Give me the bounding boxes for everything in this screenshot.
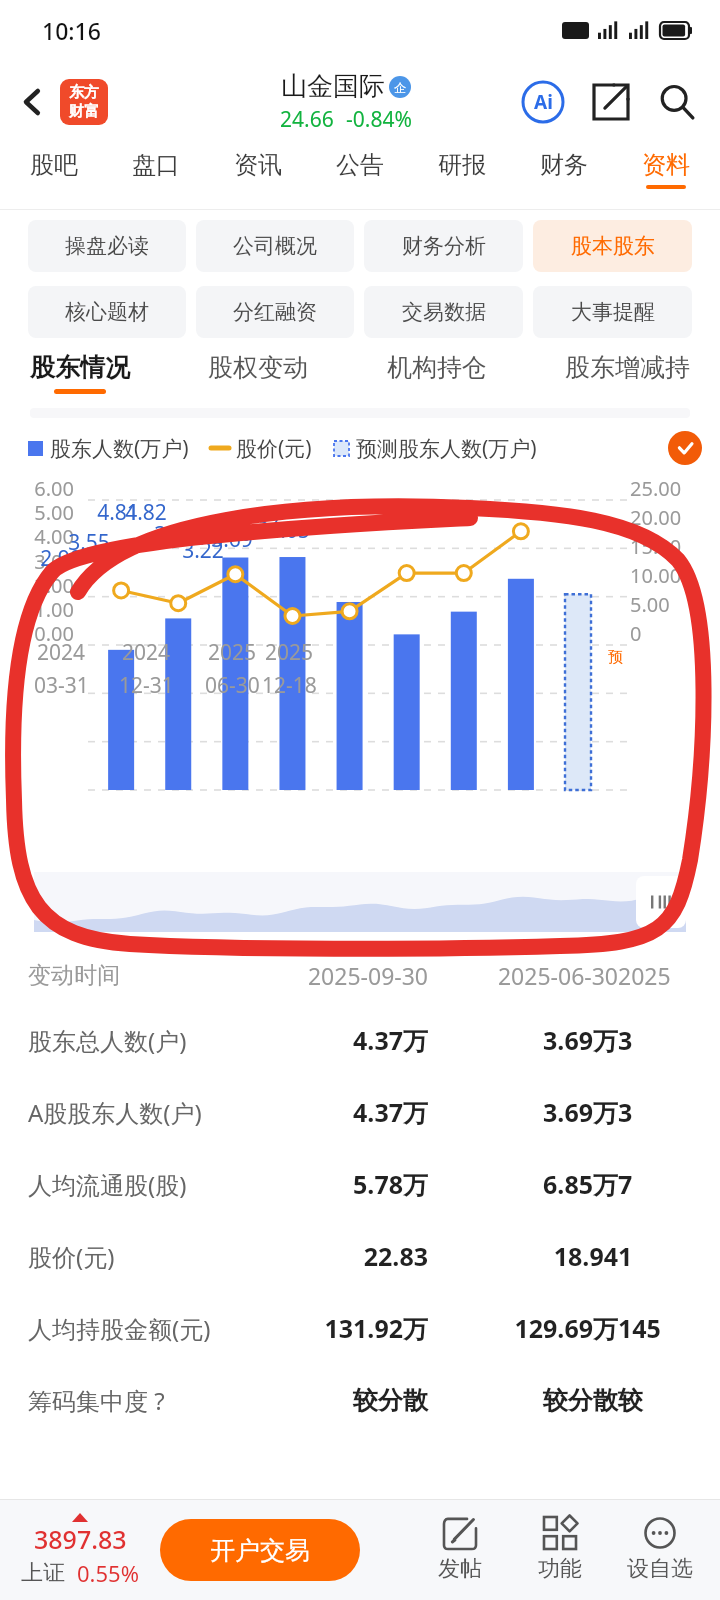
staticText: 股东人数(万户) [50,434,189,463]
staticText: 山金国际 [281,70,385,103]
staticText: 3.55 [63,528,115,557]
staticText: 筹码集中度 ? [28,1384,238,1417]
staticText: 10:16 [42,15,101,46]
staticText: A股股东人数(户) [28,1096,238,1129]
staticText: 4.05 [263,516,315,545]
button[interactable]: Search [650,75,704,129]
button[interactable]: AI [516,75,570,129]
staticText: 3 [618,1095,633,1129]
button[interactable]: 股东总人数(户) [28,1004,720,1076]
staticText: 145 [618,1311,661,1345]
staticText: 6.00 [14,475,74,502]
staticText: 4.82 [120,498,172,527]
button[interactable]: 3897.83 [0,1513,160,1588]
staticText: 财务分析 [402,233,486,259]
staticText: 分红融资 [233,299,317,325]
staticText: 股本股东 [571,233,655,259]
staticText: 交易数据 [402,299,486,325]
button[interactable]: 核心题材 [28,286,186,338]
staticText: 2025 [618,960,671,991]
button[interactable]: 公司概况 [196,220,354,272]
button[interactable]: 股价(元) [28,1220,720,1292]
staticText: 研报 [438,150,486,180]
staticText: 人均持股金额(元) [28,1312,238,1345]
staticText: 股价(元) [28,1240,238,1273]
button[interactable]: 功能 [510,1517,610,1583]
button[interactable]: 设自选 [610,1517,710,1583]
staticText: 股权变动 [208,352,308,383]
button[interactable]: 发帖 [410,1517,510,1583]
staticText: 股东总人数(户) [28,1024,238,1057]
button[interactable]: A股股东人数(户) [28,1076,720,1148]
staticText: 3.22 [177,536,229,565]
staticText: -0.84% [346,105,412,134]
staticText: 24.66 [280,105,334,134]
staticText: 股东情况 [30,352,130,383]
staticText: 变动时间 [28,961,238,990]
staticText: 5.78万 [238,1167,428,1201]
staticText: 1.00 [14,596,74,623]
staticText: 企 [394,80,406,95]
button[interactable]: 开户交易 [160,1519,360,1581]
staticText: 4.81 [92,498,144,527]
staticText: 4.37 [234,508,286,537]
button[interactable]: Share [584,75,638,129]
button[interactable]: 股东情况 [30,348,130,398]
staticText: 资讯 [234,150,282,180]
staticText: 大事提醒 [571,299,655,325]
staticText: 12-31 [119,671,174,700]
staticText: Ai [534,89,553,115]
staticText: 预测股东人数(万户) [356,434,537,463]
button[interactable]: 人均持股金额(元) [28,1292,720,1364]
button[interactable]: Expand [668,431,702,465]
button[interactable]: 人均流通股(股) [28,1148,720,1220]
staticText: 4.37万 [238,1023,428,1057]
button[interactable]: 股吧 [26,144,82,195]
button[interactable]: 股本股东 [533,220,692,272]
button[interactable]: 财务 [536,144,592,195]
button[interactable]: 研报 [434,144,490,195]
button[interactable]: 筹码集中度 ? [28,1364,720,1436]
staticText: 开户交易 [210,1535,310,1566]
button[interactable]: 操盘必读 [28,220,186,272]
staticText: 10.00 [630,562,682,589]
button[interactable]: 交易数据 [364,286,523,338]
button[interactable]: 分红融资 [196,286,354,338]
staticText: 3.89 [149,520,201,549]
staticText: 18.94 [428,1239,618,1273]
button[interactable]: 资料 [638,144,694,195]
button[interactable]: 股权变动 [208,348,308,398]
button[interactable]: 股东增减持 [565,348,690,398]
staticText: 3.69万 [428,1095,618,1129]
button[interactable]: 东方财富 [60,79,108,125]
staticText: 公告 [336,150,384,180]
staticText: 5.00 [630,591,670,618]
staticText: 1 [618,1239,633,1273]
button[interactable]: 大事提醒 [533,286,692,338]
staticText: 3.69万 [428,1023,618,1057]
staticText: 较 [618,1385,643,1416]
button[interactable]: 公告 [332,144,388,195]
staticText: 发帖 [438,1555,482,1583]
staticText: 较分散 [238,1385,428,1416]
staticText: 股吧 [30,150,78,180]
button[interactable]: 盘口 [128,144,184,195]
staticText: 3.00 [14,548,74,575]
button[interactable]: 资讯 [230,144,286,195]
button[interactable]: 机构持仓 [387,348,487,398]
staticText: 功能 [538,1555,582,1583]
staticText: 财务 [540,150,588,180]
staticText: 机构持仓 [387,352,487,383]
button[interactable]: 财务分析 [364,220,523,272]
staticText: 3897.83 [34,1522,127,1556]
staticText: 131.92万 [238,1311,428,1345]
button[interactable]: Back [10,79,56,125]
staticText: 操盘必读 [65,233,149,259]
staticText: 7 [618,1167,633,1201]
staticText: 4.37万 [238,1095,428,1129]
staticText: 0.55% [77,1558,139,1588]
staticText: 核心题材 [65,299,149,325]
button[interactable]: Resize handle [636,876,686,928]
staticText: 2025-06-30 [428,960,618,991]
staticText: 4.00 [14,523,74,550]
